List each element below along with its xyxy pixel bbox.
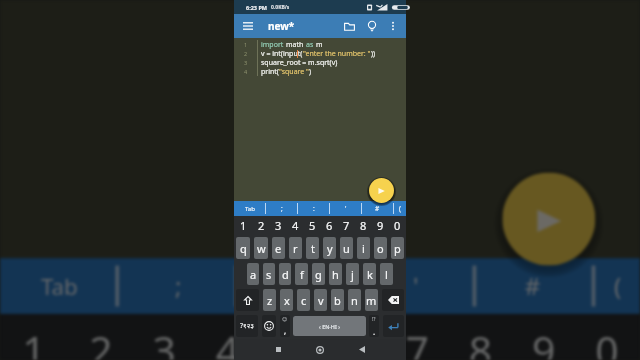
button[interactable]: ?१२३: [236, 315, 258, 337]
staticText: :: [313, 204, 315, 213]
button[interactable]: 6: [321, 216, 338, 235]
button[interactable]: b: [331, 289, 344, 311]
staticText: 3: [153, 321, 179, 360]
button[interactable]: 2: [67, 314, 134, 360]
button[interactable]: Tab: [234, 201, 265, 216]
button[interactable]: 1: [234, 216, 252, 235]
staticText: "square ": [279, 67, 309, 76]
button[interactable]: h: [329, 263, 342, 285]
staticText: i: [362, 241, 365, 256]
button[interactable]: !?: [369, 315, 379, 337]
button[interactable]: ;: [266, 201, 297, 216]
staticText: 1: [244, 41, 248, 48]
button[interactable]: :: [298, 201, 329, 216]
button[interactable]: ': [330, 201, 361, 216]
button[interactable]: ☺: [280, 315, 290, 337]
button[interactable]: (: [595, 258, 640, 314]
button[interactable]: k: [363, 263, 376, 285]
button[interactable]: Run code: [369, 178, 394, 203]
button[interactable]: ': [357, 258, 472, 314]
button[interactable]: o: [374, 237, 387, 259]
staticText: b: [334, 293, 341, 308]
button[interactable]: 5: [260, 314, 324, 360]
button[interactable]: 7: [338, 216, 355, 235]
button[interactable]: Emoji: [262, 315, 276, 337]
button[interactable]: z: [263, 289, 276, 311]
button[interactable]: Enter: [383, 315, 404, 337]
button[interactable]: c: [297, 289, 310, 311]
button[interactable]: v: [314, 289, 327, 311]
button[interactable]: 3: [134, 314, 197, 360]
button[interactable]: #: [476, 258, 592, 314]
button[interactable]: Run code: [502, 173, 595, 266]
button[interactable]: d: [279, 263, 291, 285]
button[interactable]: y: [323, 237, 336, 259]
button[interactable]: t: [306, 237, 319, 259]
staticText: v = int(input(: [261, 49, 303, 58]
staticText: 6: [326, 218, 333, 233]
button[interactable]: Open file: [338, 15, 361, 38]
button[interactable]: #: [362, 201, 393, 216]
button[interactable]: r: [289, 237, 302, 259]
button[interactable]: ;: [119, 258, 234, 314]
staticText: 4: [216, 321, 242, 360]
button[interactable]: x: [280, 289, 293, 311]
button[interactable]: More options: [383, 16, 403, 36]
staticText: 2: [89, 321, 115, 360]
button[interactable]: 5: [304, 216, 321, 235]
button[interactable]: Tab: [0, 258, 115, 314]
button[interactable]: 8: [450, 314, 513, 360]
button[interactable]: l: [380, 263, 393, 285]
button[interactable]: 8: [355, 216, 372, 235]
staticText: print(: [261, 67, 279, 76]
button[interactable]: Recent apps: [265, 339, 291, 360]
button[interactable]: Shift: [236, 289, 259, 311]
staticText: e: [275, 241, 282, 256]
button[interactable]: Home: [307, 339, 333, 360]
button[interactable]: Backspace: [382, 289, 404, 311]
button[interactable]: 7: [387, 314, 450, 360]
button[interactable]: p: [391, 237, 404, 259]
staticText: 6: [342, 321, 368, 360]
staticText: x: [284, 293, 290, 308]
staticText: 7: [343, 218, 350, 233]
button[interactable]: n: [348, 289, 361, 311]
staticText: 9: [377, 218, 384, 233]
button[interactable]: Navigation menu: [236, 14, 260, 38]
button[interactable]: (: [394, 201, 406, 216]
button[interactable]: u: [340, 237, 353, 259]
staticText: 7: [406, 321, 432, 360]
staticText: new*: [268, 19, 295, 33]
button[interactable]: Hints: [361, 15, 383, 37]
button[interactable]: 0: [389, 216, 406, 235]
button[interactable]: q: [236, 237, 250, 259]
staticText: 8: [360, 218, 367, 233]
button[interactable]: 9: [513, 314, 577, 360]
button[interactable]: 4: [197, 314, 260, 360]
button[interactable]: Back: [349, 339, 375, 360]
staticText: s: [266, 267, 272, 282]
button[interactable]: w: [254, 237, 268, 259]
button[interactable]: m: [365, 289, 378, 311]
button[interactable]: 9: [372, 216, 389, 235]
button[interactable]: e: [272, 237, 285, 259]
button[interactable]: 0: [577, 314, 640, 360]
staticText: ‹ EN·HI ›: [319, 323, 340, 330]
button[interactable]: s: [263, 263, 275, 285]
button[interactable]: ‹ EN·HI ›: [293, 316, 366, 336]
staticText: Tab: [41, 273, 78, 303]
button[interactable]: g: [312, 263, 325, 285]
button[interactable]: 4: [287, 216, 304, 235]
button[interactable]: a: [247, 263, 259, 285]
button[interactable]: 1: [0, 314, 67, 360]
button[interactable]: i: [357, 237, 370, 259]
button[interactable]: j: [346, 263, 359, 285]
staticText: y: [327, 241, 333, 256]
button[interactable]: f: [295, 263, 308, 285]
staticText: .: [373, 326, 376, 337]
button[interactable]: 6: [324, 314, 387, 360]
button[interactable]: 3: [270, 216, 287, 235]
button[interactable]: :: [238, 258, 353, 314]
button[interactable]: 2: [252, 216, 270, 235]
staticText: ,: [284, 325, 287, 336]
